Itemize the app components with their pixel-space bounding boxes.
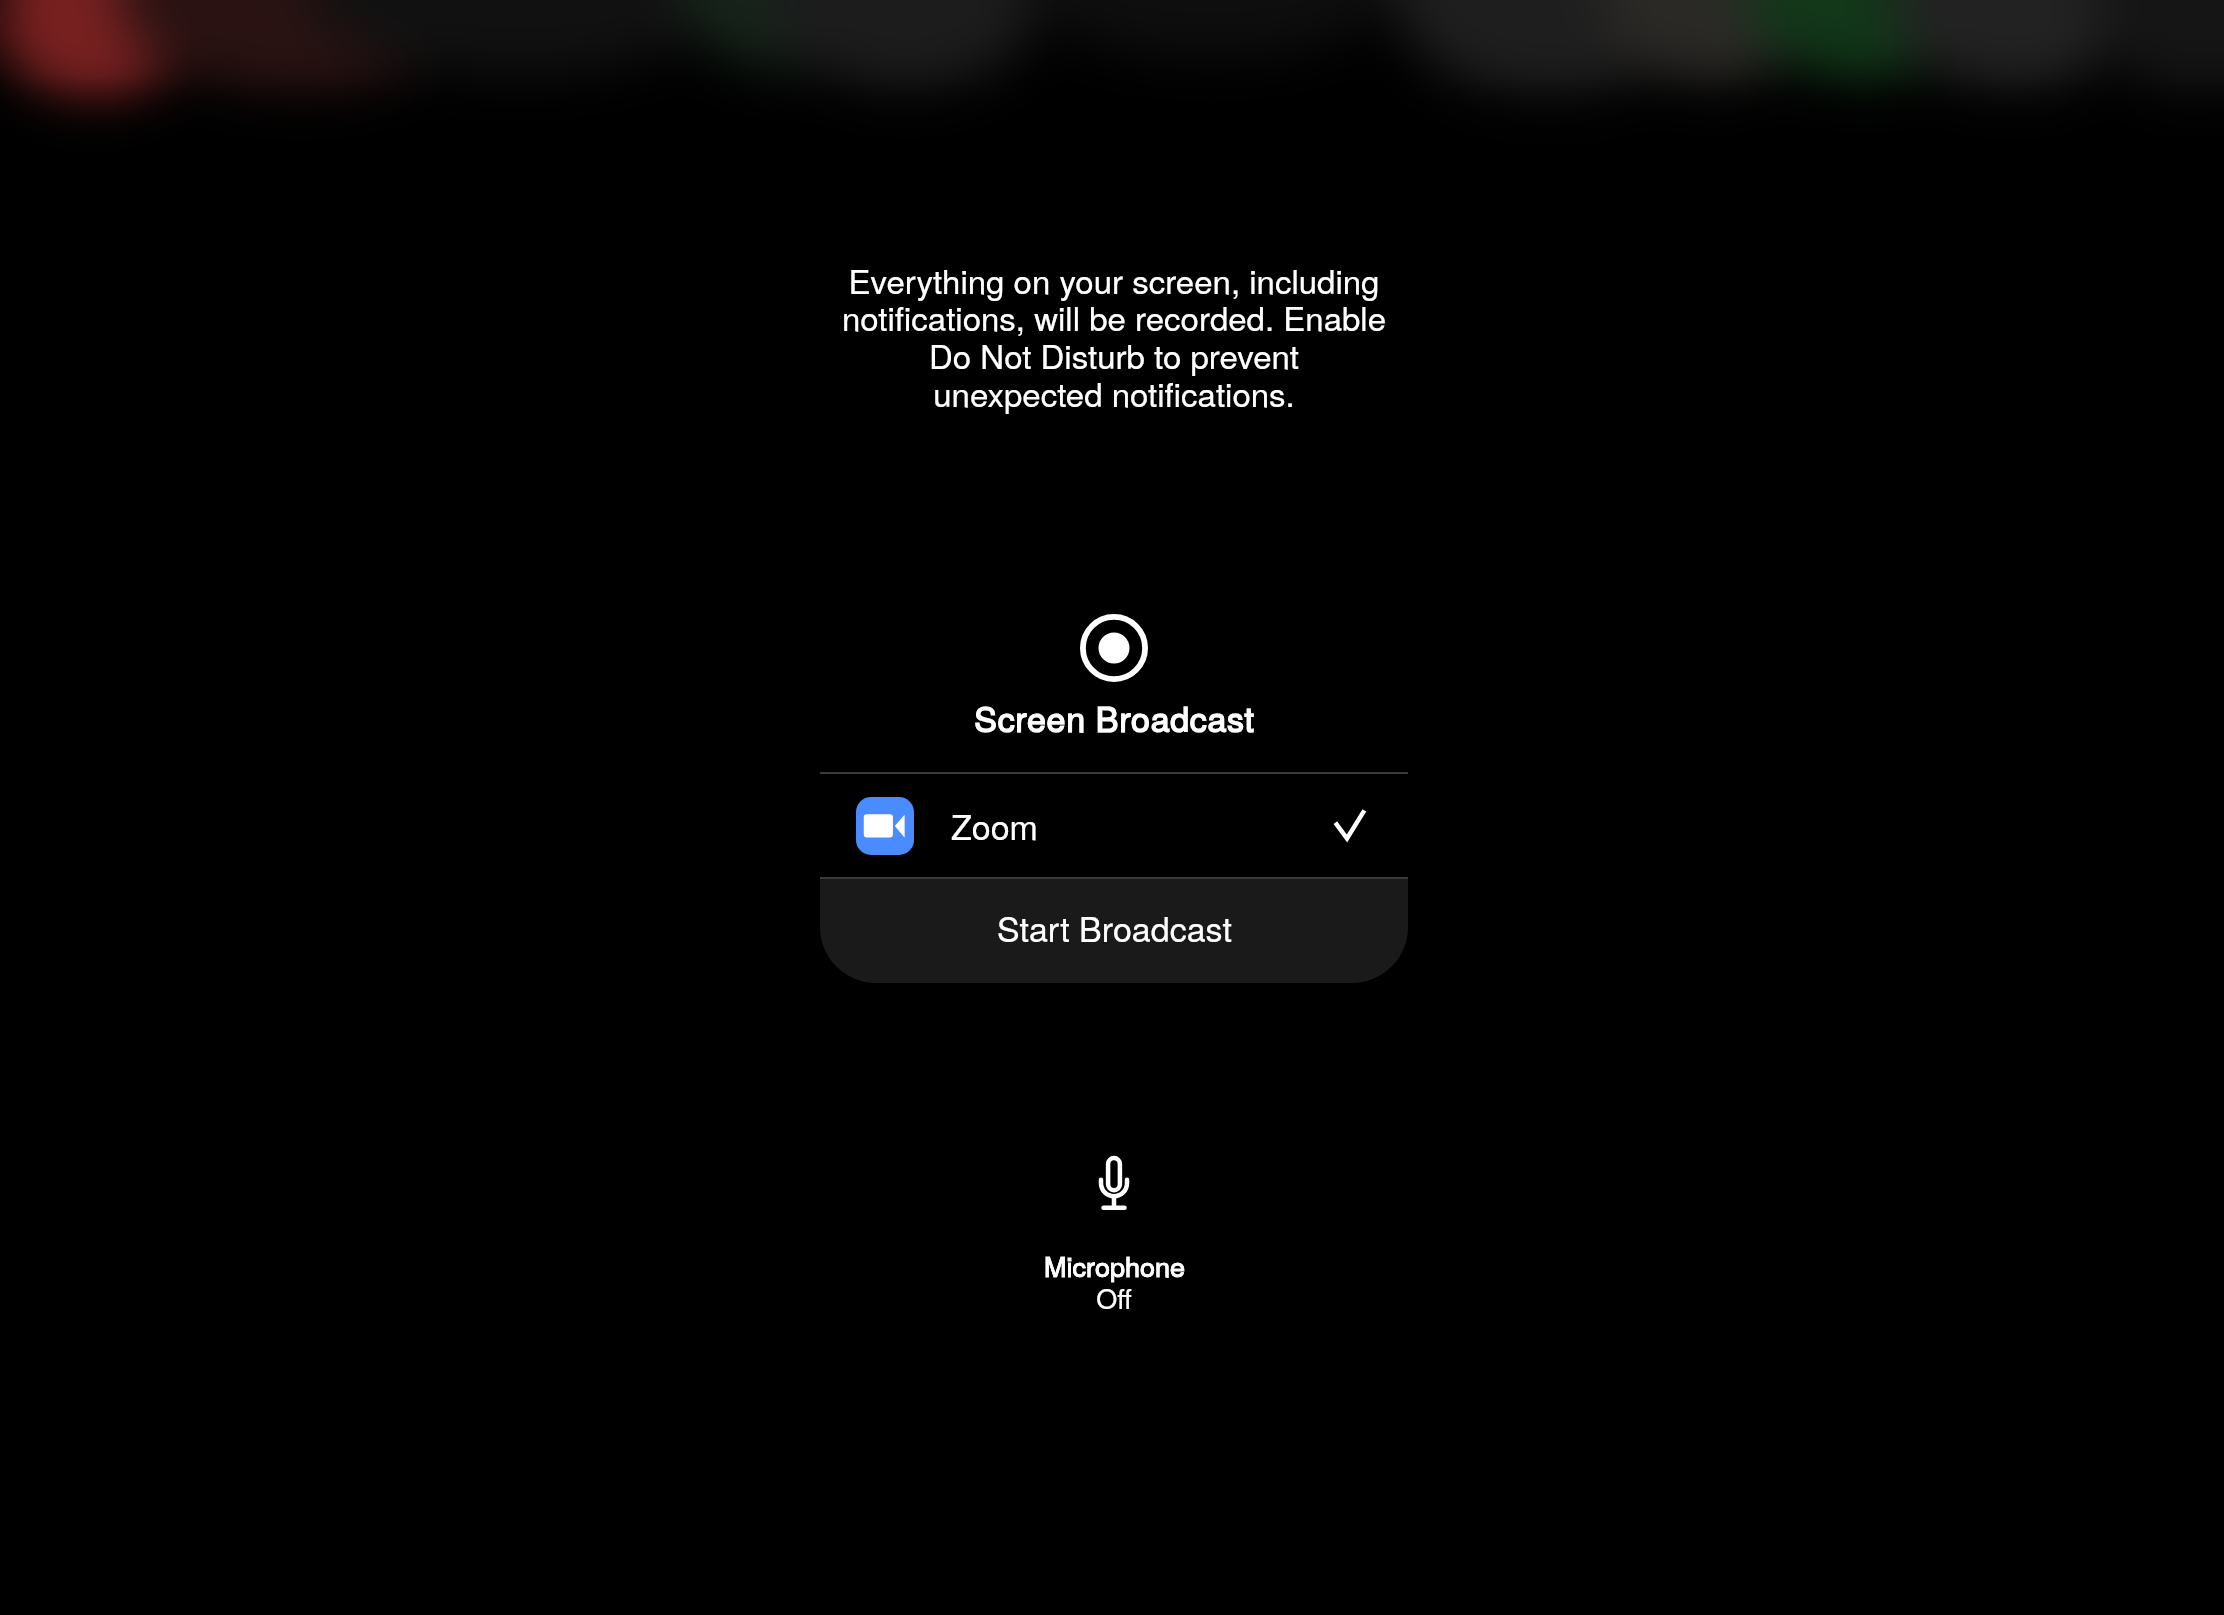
staticText: Everything on your screen, including not… bbox=[814, 256, 1414, 417]
button[interactable]: Zoom bbox=[820, 774, 1408, 877]
other: Microphone bbox=[1084, 1150, 1144, 1212]
button[interactable]: Start Broadcast bbox=[820, 877, 1408, 983]
staticText: Screen Broadcast bbox=[974, 693, 1255, 742]
staticText: Off bbox=[1096, 1278, 1132, 1317]
staticText: Zoom bbox=[951, 801, 1038, 850]
staticText: Microphone bbox=[1044, 1246, 1185, 1285]
button[interactable]: Record bbox=[1080, 614, 1148, 682]
staticText: Microphone bbox=[1044, 1246, 1185, 1285]
staticText: Start Broadcast bbox=[997, 903, 1232, 952]
button[interactable]: Microphone bbox=[964, 1150, 1264, 1322]
staticText: Screen Broadcast bbox=[974, 693, 1255, 742]
